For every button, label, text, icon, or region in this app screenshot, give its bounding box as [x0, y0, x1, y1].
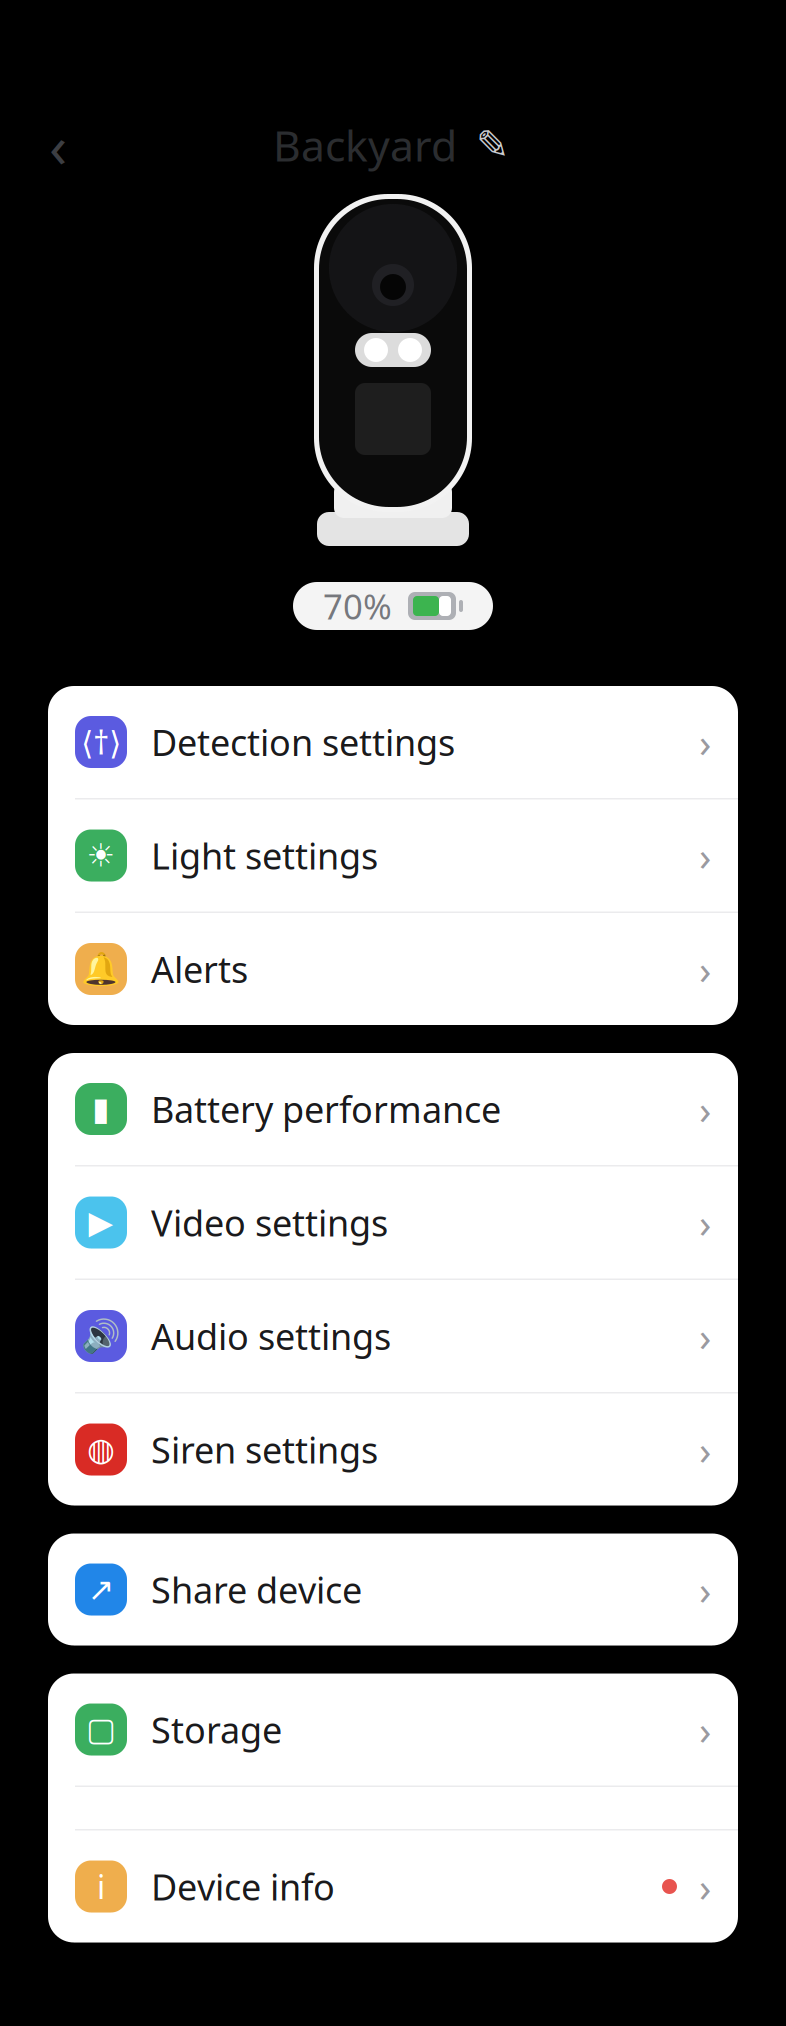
- staticText: Share device: [151, 1566, 362, 1613]
- staticText: ›: [699, 1860, 711, 1913]
- staticText: Audio settings: [151, 1312, 391, 1360]
- staticText: ›: [699, 715, 711, 768]
- staticText: 🔊: [81, 1318, 121, 1354]
- staticText: Detection settings: [151, 718, 455, 766]
- staticText: Video settings: [151, 1199, 388, 1246]
- staticText: ▮: [92, 1091, 110, 1127]
- button[interactable]: ▶: [48, 1166, 738, 1278]
- staticText: Storage: [151, 1706, 282, 1753]
- button[interactable]: ▮: [48, 1053, 738, 1165]
- button[interactable]: 🔊: [48, 1280, 738, 1392]
- staticText: Device info: [151, 1863, 335, 1910]
- staticText: ›: [699, 1309, 711, 1362]
- button[interactable]: ◍: [48, 1393, 738, 1505]
- staticText: ›: [699, 1563, 711, 1616]
- staticText: i: [97, 1865, 105, 1908]
- staticText: ›: [699, 942, 711, 995]
- button[interactable]: Rename device: [473, 125, 513, 165]
- staticText: Battery performance: [151, 1085, 501, 1133]
- staticText: ‹: [49, 106, 67, 184]
- staticText: ↗: [87, 1571, 114, 1608]
- staticText: ›: [699, 829, 711, 882]
- staticText: ☀: [86, 837, 115, 874]
- staticText: ▶: [88, 1204, 113, 1241]
- staticText: Alerts: [151, 945, 248, 993]
- button[interactable]: Back: [26, 113, 90, 177]
- staticText: ◍: [87, 1431, 115, 1468]
- staticText: ⟨†⟩: [81, 721, 121, 763]
- staticText: Backyard: [273, 117, 457, 173]
- button[interactable]: ↗: [48, 1533, 738, 1645]
- button[interactable]: i: [48, 1830, 738, 1942]
- button[interactable]: ▢: [48, 1673, 738, 1785]
- staticText: ›: [699, 1423, 711, 1476]
- staticText: ✎: [476, 122, 510, 168]
- staticText: Light settings: [151, 832, 378, 879]
- staticText: 70%: [323, 583, 392, 629]
- staticText: ›: [699, 1196, 711, 1249]
- button[interactable]: ⟨†⟩: [48, 686, 738, 798]
- button[interactable]: 🔔: [48, 913, 738, 1025]
- button[interactable]: ☀: [48, 799, 738, 911]
- staticText: ›: [699, 1703, 711, 1756]
- staticText: Siren settings: [151, 1426, 378, 1473]
- staticText: ›: [699, 1082, 711, 1135]
- staticText: 🔔: [81, 951, 121, 987]
- staticText: ▢: [86, 1711, 116, 1748]
